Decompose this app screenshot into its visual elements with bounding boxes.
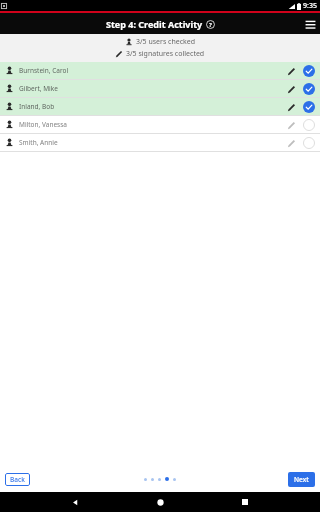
button[interactable]: Sign Gilbert, Mike bbox=[284, 82, 298, 96]
button[interactable]: Page 4 bbox=[165, 477, 169, 481]
button[interactable]: Check Milton, Vanessa bbox=[302, 118, 315, 131]
staticText: Burnstein, Carol bbox=[19, 66, 284, 75]
staticText: 9:35 bbox=[303, 1, 317, 11]
button[interactable]: Recent apps bbox=[235, 492, 255, 512]
button[interactable]: Back bbox=[65, 492, 85, 512]
button[interactable]: Check Burnstein, Carol bbox=[302, 64, 315, 77]
button[interactable]: Sign Burnstein, Carol bbox=[284, 64, 298, 78]
staticText: Milton, Vanessa bbox=[19, 120, 284, 129]
button[interactable]: Page 2 bbox=[151, 478, 154, 481]
staticText: Gilbert, Mike bbox=[19, 84, 284, 93]
button[interactable]: Sign Inland, Bob bbox=[284, 100, 298, 114]
staticText: Inland, Bob bbox=[19, 102, 284, 111]
staticText: ? bbox=[209, 21, 212, 29]
button[interactable]: Sign Smith, Annie bbox=[284, 136, 298, 150]
button[interactable]: Menu bbox=[300, 14, 320, 34]
button[interactable]: Page 3 bbox=[158, 478, 161, 481]
staticText: 3/5 signatures collected bbox=[126, 49, 205, 59]
staticText: 3/5 users checked bbox=[136, 37, 196, 47]
button[interactable]: Check Inland, Bob bbox=[302, 100, 315, 113]
staticText: Smith, Annie bbox=[19, 138, 284, 147]
button[interactable]: Back bbox=[5, 473, 30, 486]
button[interactable]: Sign Milton, Vanessa bbox=[284, 118, 298, 132]
staticText: Step 4: Credit Activity bbox=[106, 18, 203, 30]
button[interactable]: Inland, Bob bbox=[0, 98, 320, 115]
button[interactable]: Information bbox=[206, 20, 215, 29]
button[interactable]: Check Smith, Annie bbox=[302, 136, 315, 149]
button[interactable]: Gilbert, Mike bbox=[0, 80, 320, 97]
button[interactable]: Burnstein, Carol bbox=[0, 62, 320, 79]
button[interactable]: Home bbox=[150, 492, 170, 512]
button[interactable]: Next bbox=[288, 472, 315, 487]
button[interactable]: Page 5 bbox=[173, 478, 176, 481]
button[interactable]: Smith, Annie bbox=[0, 134, 320, 151]
staticText: Next bbox=[294, 475, 309, 484]
button[interactable]: Milton, Vanessa bbox=[0, 116, 320, 133]
staticText: Back bbox=[10, 475, 25, 484]
button[interactable]: Check Gilbert, Mike bbox=[302, 82, 315, 95]
button[interactable]: Page 1 bbox=[144, 478, 147, 481]
